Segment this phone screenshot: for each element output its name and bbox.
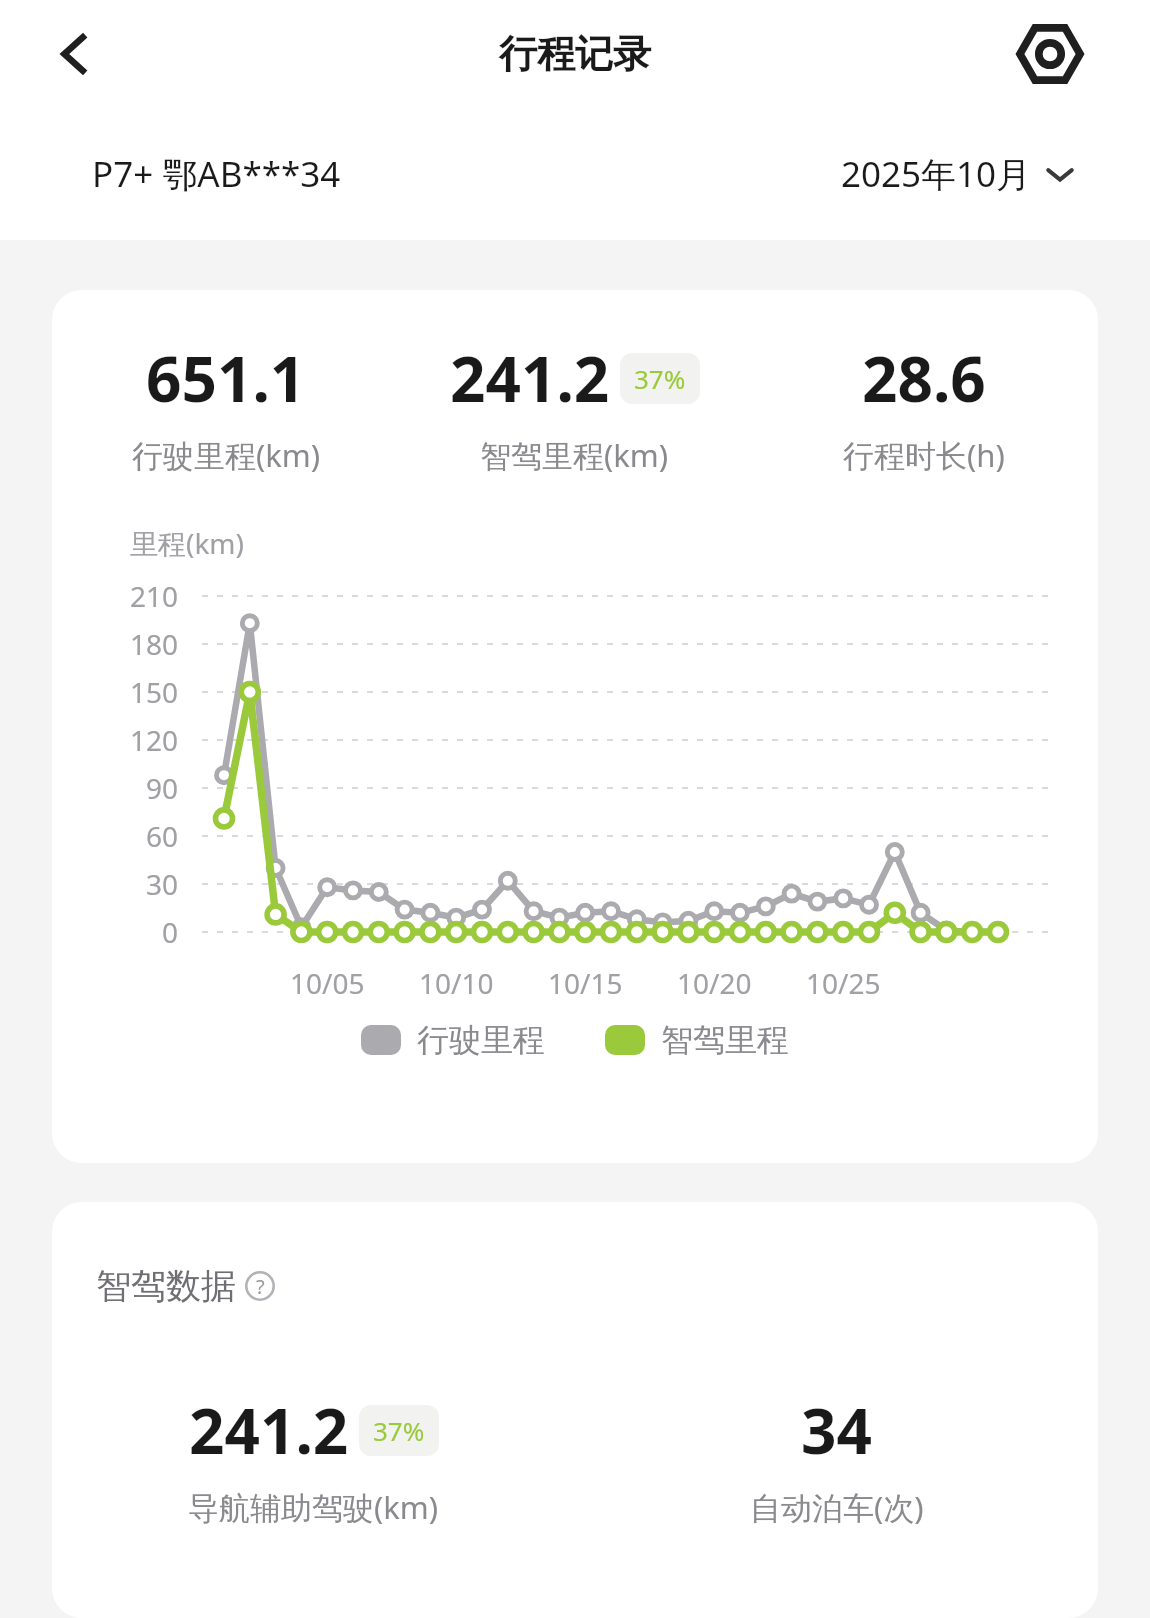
staticText: 行驶里程(km): [132, 434, 321, 476]
staticText: 60: [145, 817, 178, 855]
staticText: 智驾数据: [96, 1264, 236, 1308]
staticText: 行程记录: [499, 30, 651, 78]
staticText: 90: [145, 769, 178, 807]
staticText: 37%: [634, 361, 686, 396]
staticText: 0: [161, 913, 178, 951]
staticText: 10/15: [548, 964, 623, 1002]
staticText: 34: [801, 1388, 872, 1472]
staticText: 30: [145, 865, 178, 903]
button[interactable]: Help: [244, 1270, 276, 1302]
staticText: 241.2: [450, 336, 610, 420]
staticText: 120: [129, 721, 178, 759]
staticText: 里程(km): [130, 524, 244, 562]
staticText: 651.1: [146, 336, 306, 420]
button[interactable]: 2025年10月: [841, 150, 1074, 198]
staticText: 2025年10月: [841, 150, 1032, 198]
staticText: 150: [129, 673, 178, 711]
staticText: 10/25: [806, 964, 881, 1002]
staticText: P7+ 鄂AB***34: [92, 150, 341, 198]
staticText: 28.6: [862, 336, 986, 420]
button[interactable]: Back: [40, 20, 108, 88]
staticText: 210: [129, 577, 178, 615]
staticText: 智驾里程: [661, 1020, 789, 1060]
staticText: 智驾里程(km): [480, 434, 669, 476]
staticText: 10/20: [677, 964, 752, 1002]
staticText: 37%: [373, 1413, 425, 1448]
staticText: 10/05: [290, 964, 365, 1002]
staticText: 自动泊车(次): [750, 1486, 924, 1528]
button[interactable]: Settings: [1012, 16, 1088, 92]
staticText: 导航辅助驾驶(km): [188, 1486, 439, 1528]
staticText: 行程时长(h): [843, 434, 1005, 476]
staticText: 180: [129, 625, 178, 663]
staticText: ?: [256, 1273, 265, 1300]
staticText: 241.2: [189, 1388, 349, 1472]
staticText: 10/10: [419, 964, 494, 1002]
staticText: 行驶里程: [417, 1020, 545, 1060]
